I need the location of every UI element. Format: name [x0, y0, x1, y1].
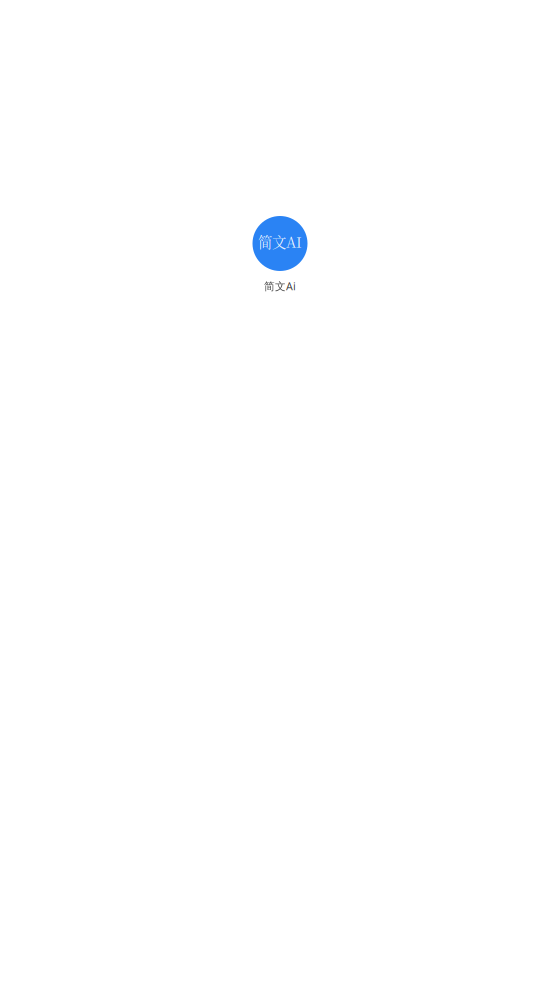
- staticText: 简文AI: [258, 231, 302, 252]
- staticText: 简文Ai: [264, 279, 296, 293]
